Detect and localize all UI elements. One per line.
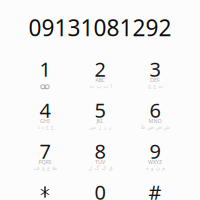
staticText: ق ک گ ل xyxy=(88,165,112,171)
staticText: 1 xyxy=(39,56,50,82)
staticText: ظ ع غ ف xyxy=(33,165,56,171)
button[interactable]: 8 xyxy=(72,143,127,184)
staticText: ث ج چ xyxy=(147,83,162,89)
button[interactable]: # xyxy=(127,184,182,200)
staticText: # xyxy=(148,179,161,200)
staticText: JKL xyxy=(96,117,103,125)
staticText: 09131081292 xyxy=(28,12,171,42)
staticText: ش ص ض ط xyxy=(140,124,170,130)
staticText: ح خ د ذ xyxy=(37,124,53,130)
button[interactable]: 6 xyxy=(127,102,182,143)
button[interactable]: 09131081292 xyxy=(0,15,200,40)
button[interactable]: 1 xyxy=(17,61,72,102)
staticText: م ن و ه xyxy=(145,165,164,171)
staticText: 2 xyxy=(94,56,105,82)
staticText: DEF xyxy=(150,76,160,84)
staticText: 9 xyxy=(149,138,160,164)
button[interactable] xyxy=(17,184,72,200)
button[interactable]: 9 xyxy=(127,143,182,184)
button[interactable]: 7 xyxy=(17,143,72,184)
button[interactable]: 2 xyxy=(72,61,127,102)
button[interactable]: 0 xyxy=(72,184,127,200)
staticText: TUV xyxy=(95,158,105,166)
staticText: 0 xyxy=(94,179,105,200)
staticText: PQRS xyxy=(38,158,51,166)
staticText: ا ب پ ت xyxy=(89,83,111,89)
staticText: MNO xyxy=(148,117,161,125)
staticText: 3 xyxy=(149,56,160,82)
button[interactable]: 3 xyxy=(127,61,182,102)
staticText: 5 xyxy=(94,97,105,123)
button[interactable]: 5 xyxy=(72,102,127,143)
staticText: 4 xyxy=(39,97,50,123)
staticText: GHI xyxy=(40,117,50,125)
staticText: 7 xyxy=(39,138,50,164)
button[interactable]: 4 xyxy=(17,102,72,143)
staticText: ر ز ژ س xyxy=(89,124,111,130)
staticText: ABC xyxy=(95,76,104,84)
staticText: 6 xyxy=(149,97,160,123)
staticText: WXYZ xyxy=(148,158,162,166)
staticText: 8 xyxy=(94,138,105,164)
